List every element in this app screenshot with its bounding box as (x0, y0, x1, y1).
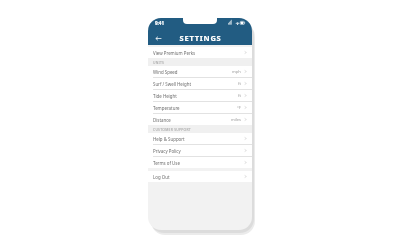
staticText: Surf / Swell Height (153, 81, 191, 87)
button[interactable]: Temperature (148, 102, 252, 113)
button[interactable]: Privacy Policy (148, 145, 252, 156)
button[interactable]: Back (148, 31, 168, 45)
staticText: UNITS (153, 60, 165, 65)
button[interactable]: Log Out (148, 171, 252, 182)
button[interactable]: Surf / Swell Height (148, 78, 252, 89)
staticText: Tide Height (153, 93, 177, 99)
staticText: Distance (153, 117, 171, 123)
button[interactable]: View Premium Perks (148, 47, 252, 58)
staticText: °F (237, 105, 241, 110)
staticText: CUSTOMER SUPPORT (153, 127, 191, 132)
button[interactable]: Terms of Use (148, 157, 252, 168)
button[interactable]: Help & Support (148, 133, 252, 144)
staticText: Privacy Policy (153, 148, 181, 154)
button[interactable]: Distance (148, 114, 252, 125)
staticText: 9:41 (155, 20, 164, 26)
staticText: Help & Support (153, 136, 185, 142)
staticText: Log Out (153, 174, 170, 180)
staticText: mph (232, 69, 241, 74)
button[interactable]: Wind Speed (148, 66, 252, 77)
staticText: ft (238, 81, 241, 86)
staticText: Terms of Use (153, 160, 180, 166)
staticText: Temperature (153, 105, 180, 111)
button[interactable]: Tide Height (148, 90, 252, 101)
staticText: View Premium Perks (153, 50, 196, 56)
staticText: miles (231, 117, 241, 122)
staticText: ft (238, 93, 241, 98)
staticText: Wind Speed (153, 69, 178, 75)
staticText: SETTINGS (179, 33, 222, 43)
